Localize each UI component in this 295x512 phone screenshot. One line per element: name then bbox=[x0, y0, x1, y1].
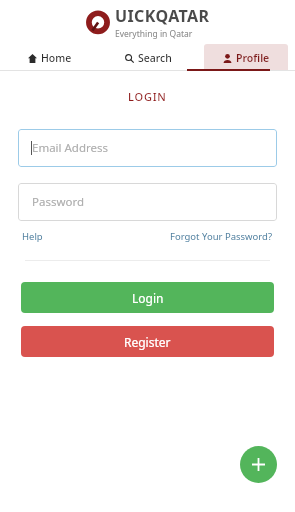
staticText: Register bbox=[124, 334, 171, 350]
button[interactable]: Add bbox=[240, 446, 277, 483]
staticText: Help bbox=[22, 230, 43, 243]
staticText: UICKQATAR bbox=[115, 5, 210, 27]
button[interactable]: Forgot Your Password? bbox=[170, 230, 273, 243]
staticText: Login bbox=[132, 290, 164, 306]
button[interactable]: Login bbox=[21, 282, 274, 313]
button[interactable]: Search bbox=[99, 44, 197, 71]
button[interactable]: Profile bbox=[204, 44, 288, 71]
button[interactable]: Help bbox=[22, 230, 43, 243]
staticText: Everything in Qatar bbox=[115, 28, 193, 40]
button[interactable]: Email Address bbox=[18, 129, 277, 167]
staticText: Profile bbox=[236, 51, 270, 65]
button[interactable]: Password bbox=[18, 183, 277, 221]
button[interactable]: Home bbox=[0, 44, 99, 71]
staticText: Forgot Your Password? bbox=[170, 230, 273, 243]
staticText: LOGIN bbox=[128, 89, 167, 104]
staticText: Search bbox=[138, 51, 172, 65]
staticText: Home bbox=[41, 51, 72, 65]
button[interactable]: Register bbox=[21, 326, 274, 357]
staticText: Email Address bbox=[32, 140, 109, 156]
staticText: Password bbox=[32, 194, 85, 210]
